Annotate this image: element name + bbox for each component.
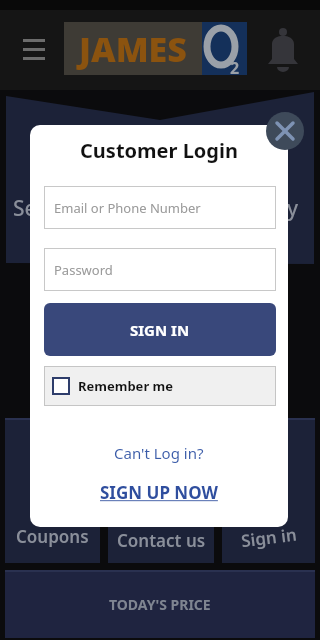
button[interactable]: SIGN UP NOW bbox=[30, 481, 288, 504]
button[interactable]: TODAY'S PRICE bbox=[5, 570, 315, 638]
button[interactable]: SIGN IN bbox=[44, 303, 276, 356]
button[interactable]: Coupons bbox=[5, 418, 100, 563]
button[interactable]: Remember me bbox=[44, 366, 276, 406]
button[interactable]: JAMES bbox=[64, 22, 202, 75]
staticText: y bbox=[287, 194, 299, 223]
staticText: 2 bbox=[230, 57, 240, 79]
staticText: Coupons bbox=[16, 525, 89, 548]
button[interactable]: Sign in bbox=[222, 418, 315, 563]
button[interactable] bbox=[18, 34, 52, 64]
staticText: Sign in bbox=[240, 523, 298, 552]
button[interactable] bbox=[263, 24, 303, 74]
staticText: Customer Login bbox=[80, 137, 238, 164]
button[interactable]: Password bbox=[44, 248, 276, 291]
button[interactable]: Can't Log in? bbox=[30, 443, 288, 463]
staticText: Remember me bbox=[78, 377, 174, 395]
staticText: Email or Phone Number bbox=[54, 199, 201, 217]
staticText: JAMES bbox=[79, 26, 187, 72]
staticText: Sell your galaxy bbox=[13, 194, 171, 223]
button[interactable]: Contact us bbox=[108, 418, 214, 563]
staticText: SIGN IN bbox=[130, 320, 190, 340]
staticText: SIGN UP NOW bbox=[100, 481, 218, 504]
staticText: Can't Log in? bbox=[114, 443, 204, 463]
staticText: Contact us bbox=[117, 529, 206, 552]
button[interactable] bbox=[266, 112, 304, 150]
staticText: Password bbox=[54, 261, 113, 279]
button[interactable]: Email or Phone Number bbox=[44, 186, 276, 229]
staticText: TODAY'S PRICE bbox=[109, 595, 211, 614]
